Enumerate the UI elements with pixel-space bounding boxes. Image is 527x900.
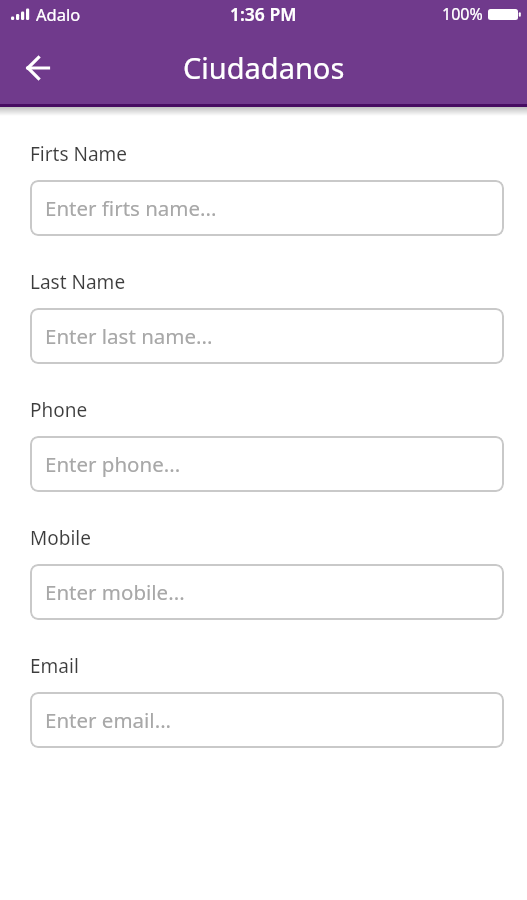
staticText: Enter firts name... [45,194,217,222]
staticText: Ciudadanos [183,48,345,87]
staticText: Enter phone... [45,450,181,478]
staticText: 1:36 PM [230,2,297,26]
button[interactable]: Enter email... [30,692,504,748]
staticText: 100% [442,3,483,25]
staticText: Phone [30,397,88,423]
staticText: Last Name [30,269,126,295]
staticText: Mobile [30,525,91,551]
button[interactable] [14,44,62,92]
button[interactable]: Enter phone... [30,436,504,492]
staticText: Enter last name... [45,322,213,350]
staticText: Adalo [36,3,81,25]
button[interactable]: Enter last name... [30,308,504,364]
button[interactable]: Enter firts name... [30,180,504,236]
staticText: Email [30,653,79,679]
staticText: Firts Name [30,141,128,167]
button[interactable]: Enter mobile... [30,564,504,620]
staticText: Enter email... [45,706,172,734]
staticText: Enter mobile... [45,578,185,606]
